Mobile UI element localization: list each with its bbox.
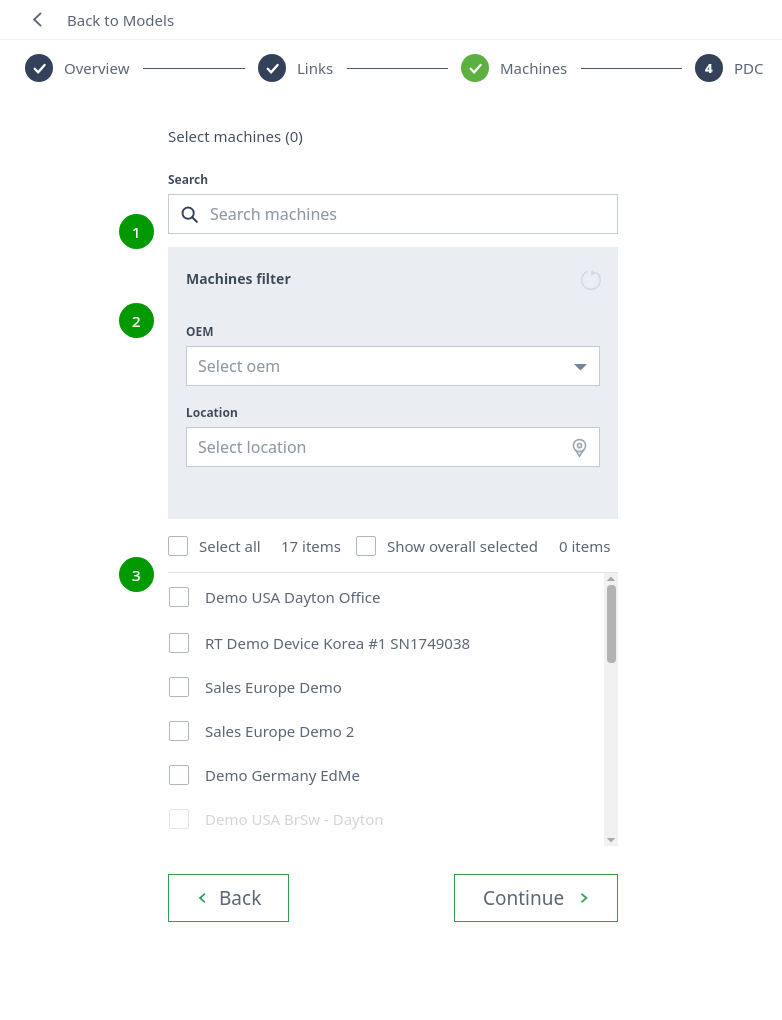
staticText: Demo Germany EdMe <box>205 765 360 785</box>
staticText: Overview <box>64 58 130 78</box>
button[interactable]: Machines step <box>461 54 489 82</box>
staticText: 3 <box>132 565 141 585</box>
staticText: Machines <box>500 58 568 78</box>
button[interactable]: Search machines <box>168 194 618 234</box>
staticText: Search machines <box>210 203 338 225</box>
staticText: Select machines (0) <box>168 126 303 146</box>
staticText: Select all <box>199 536 261 556</box>
button[interactable]: Step 3 <box>119 557 154 592</box>
button[interactable]: Continue <box>454 874 618 922</box>
staticText: Machines filter <box>186 269 291 288</box>
button[interactable]: Back <box>168 874 289 922</box>
button[interactable]: Links step <box>258 54 286 82</box>
staticText: Back <box>219 885 262 911</box>
staticText: RT Demo Device Korea #1 SN1749038 <box>205 633 471 653</box>
button[interactable]: RT Demo Device Korea #1 SN1749038 <box>168 621 604 665</box>
staticText: 17 items <box>281 536 342 556</box>
button[interactable]: Select all <box>168 536 261 556</box>
button[interactable]: Demo USA BrSw - Dayton <box>168 797 604 841</box>
staticText: 4 <box>705 59 713 77</box>
button[interactable]: Step 1 <box>119 214 154 249</box>
staticText: Select location <box>198 436 307 458</box>
staticText: OEM <box>186 323 214 339</box>
button[interactable]: PDC step <box>695 54 723 82</box>
staticText: PDC <box>734 58 764 78</box>
staticText: 1 <box>132 222 141 242</box>
button[interactable]: Reset filters <box>580 269 602 291</box>
staticText: Search <box>168 171 209 187</box>
button[interactable]: Sales Europe Demo 2 <box>168 709 604 753</box>
staticText: Show overall selected <box>387 536 539 556</box>
staticText: Location <box>186 404 238 420</box>
staticText: 2 <box>132 311 141 331</box>
button[interactable]: Step 2 <box>119 303 154 338</box>
staticText: Sales Europe Demo <box>205 677 342 697</box>
button[interactable]: Demo USA Dayton Office <box>168 573 604 621</box>
staticText: Select oem <box>198 355 281 377</box>
staticText: Sales Europe Demo 2 <box>205 721 355 741</box>
button[interactable]: Select location <box>186 427 600 467</box>
staticText: Back to Models <box>67 10 175 30</box>
button[interactable]: Overview step <box>25 54 53 82</box>
staticText: Links <box>297 58 334 78</box>
button[interactable]: Show overall selected <box>356 536 539 556</box>
staticText: Continue <box>483 885 565 911</box>
button[interactable]: Sales Europe Demo <box>168 665 604 709</box>
staticText: Demo USA BrSw - Dayton <box>205 809 384 829</box>
button[interactable]: Select oem <box>186 346 600 386</box>
staticText: Demo USA Dayton Office <box>205 587 381 607</box>
button[interactable]: Back to Models <box>0 0 782 39</box>
button[interactable]: Demo Germany EdMe <box>168 753 604 797</box>
staticText: 0 items <box>559 536 611 556</box>
